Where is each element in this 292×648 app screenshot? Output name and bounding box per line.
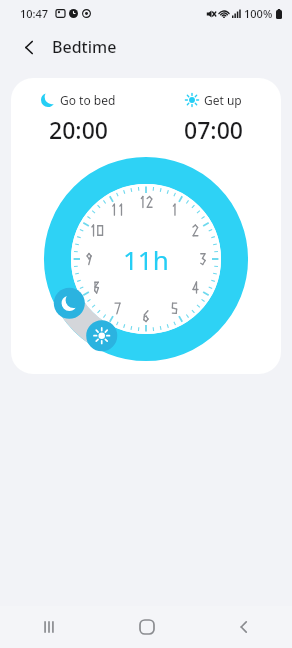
button[interactable]: Back <box>12 30 46 64</box>
button[interactable]: Get up <box>146 92 281 145</box>
staticText: 07:00 <box>184 114 243 145</box>
staticText: Go to bed <box>60 92 116 108</box>
staticText: 100% <box>244 6 273 21</box>
button[interactable]: Sleep schedule dial <box>41 154 251 364</box>
staticText: Bedtime <box>52 36 117 58</box>
staticText: Get up <box>204 92 242 108</box>
button[interactable]: Back <box>195 606 292 648</box>
staticText: 11h <box>123 242 169 277</box>
button[interactable]: Home <box>98 606 195 648</box>
staticText: 20:00 <box>49 114 108 145</box>
staticText: 10:47 <box>20 6 49 21</box>
button[interactable]: Go to bed <box>11 92 146 145</box>
button[interactable]: Recent apps <box>0 606 98 648</box>
